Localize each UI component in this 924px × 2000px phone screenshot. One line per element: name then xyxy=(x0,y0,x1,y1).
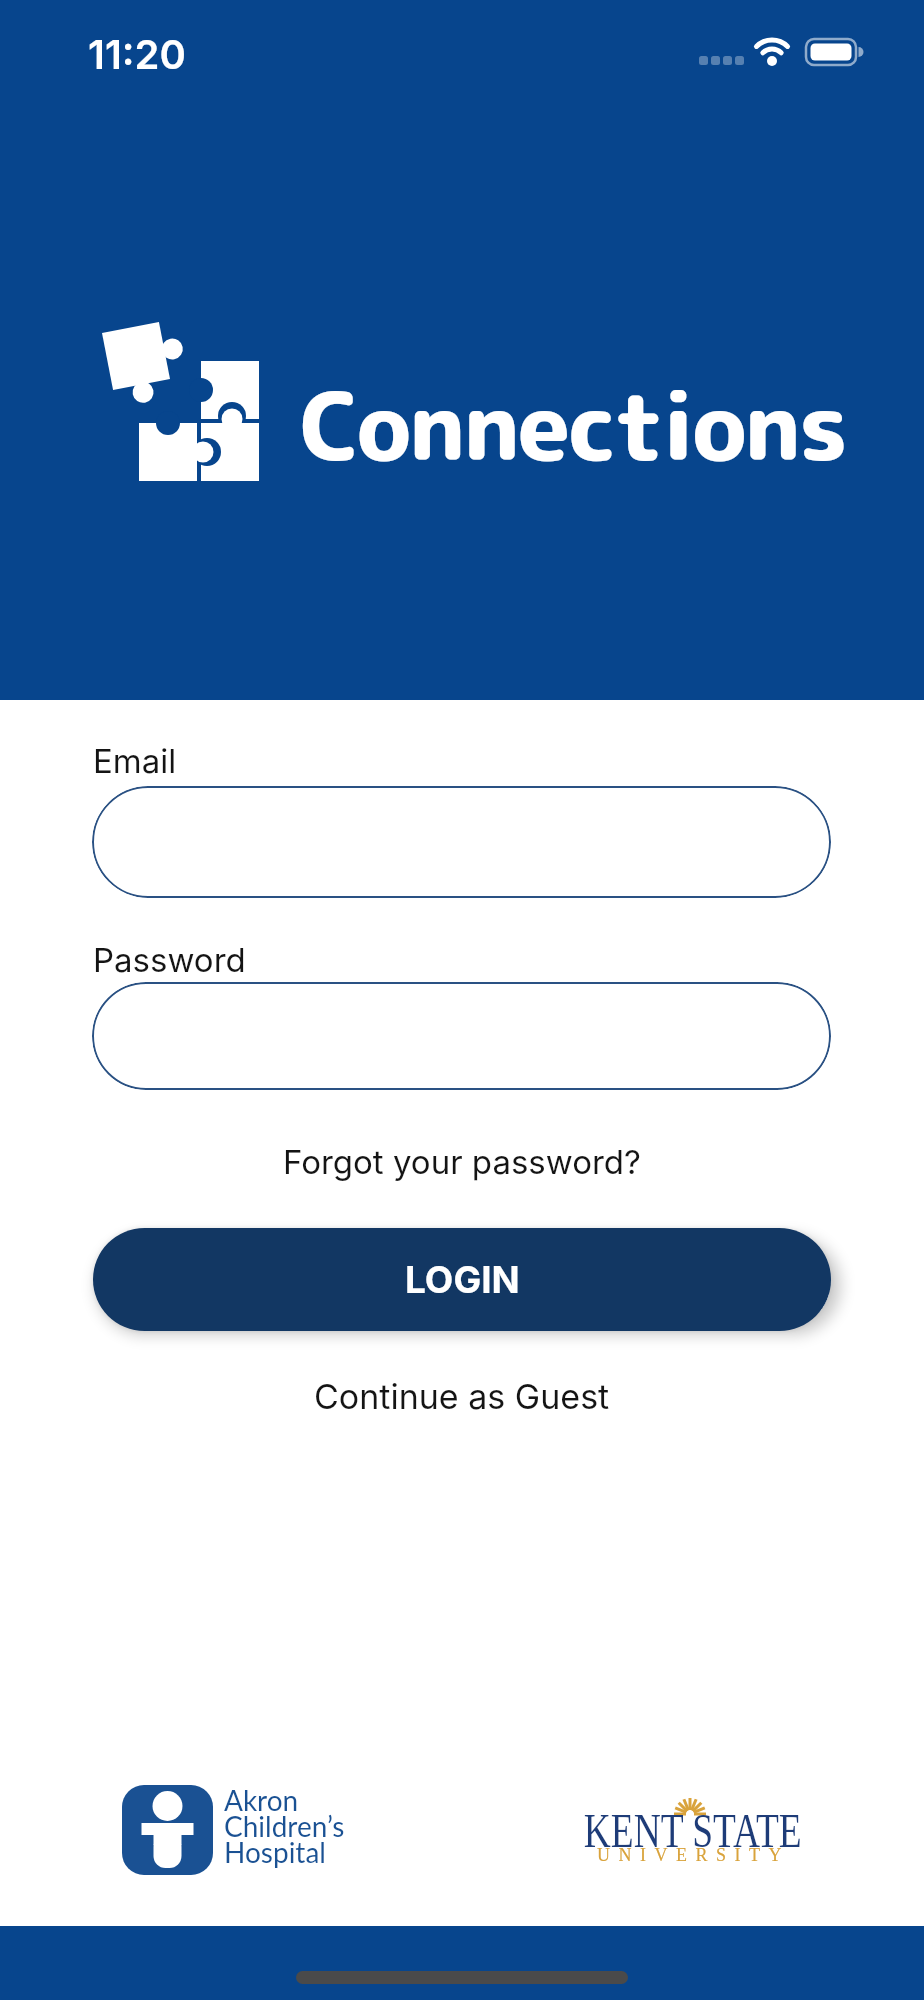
button[interactable] xyxy=(92,982,831,1090)
staticText: Connections xyxy=(300,360,846,490)
staticText: Children’s xyxy=(224,1809,345,1843)
staticText: LOGIN xyxy=(405,1257,520,1302)
button[interactable]: Forgot your password? xyxy=(283,1142,641,1182)
staticText: KENT STATE xyxy=(584,1804,802,1854)
staticText: Hospital xyxy=(224,1835,326,1869)
button[interactable] xyxy=(92,786,831,898)
staticText: Email xyxy=(93,741,177,781)
staticText: UNIVERSITY xyxy=(597,1845,790,1865)
staticText: Password xyxy=(93,940,246,980)
button[interactable]: Continue as Guest xyxy=(314,1376,610,1417)
staticText: Akron xyxy=(224,1783,299,1817)
staticText: 11:20 xyxy=(88,30,186,78)
button[interactable]: LOGIN xyxy=(93,1228,831,1331)
